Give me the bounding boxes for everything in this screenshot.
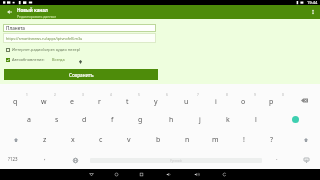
staticText: 2 — [54, 93, 56, 97]
button[interactable]: f — [98, 110, 127, 129]
button[interactable]: i — [201, 91, 230, 110]
staticText: 5 — [138, 93, 140, 97]
button[interactable]: ! — [229, 130, 258, 149]
button[interactable]: q — [1, 91, 30, 110]
button[interactable]: ?123 — [0, 149, 26, 168]
button[interactable]: Backspace — [290, 91, 319, 110]
staticText: p — [269, 97, 274, 107]
staticText: c — [99, 135, 103, 145]
button[interactable]: g — [126, 110, 155, 129]
staticText: https://smarttvnews.ru/apps/iptvnofeB.m3… — [6, 36, 83, 41]
staticText: y — [154, 97, 158, 107]
staticText: Автообновление: — [12, 57, 45, 62]
button[interactable]: y — [141, 91, 170, 110]
button[interactable]: Интернет-радио(через аудио плеер) — [4, 46, 156, 53]
staticText: 3 — [82, 93, 84, 97]
staticText: m — [212, 135, 219, 145]
button[interactable]: , — [33, 149, 57, 168]
staticText: Сохранить — [69, 72, 94, 78]
button[interactable]: Автообновление: — [4, 56, 156, 63]
staticText: Интернет-радио(через аудио плеер) — [12, 47, 81, 52]
staticText: z — [43, 135, 47, 145]
staticText: 6 — [166, 93, 168, 97]
button[interactable]: Shift — [1, 130, 30, 149]
button[interactable]: Home — [105, 169, 127, 180]
button[interactable]: u — [172, 91, 201, 110]
staticText: . — [276, 154, 278, 162]
button[interactable]: o — [229, 91, 258, 110]
staticText: g — [138, 115, 143, 125]
button[interactable]: Back — [80, 169, 102, 180]
button[interactable]: Recents — [130, 169, 152, 180]
button[interactable]: l — [241, 110, 270, 129]
staticText: t — [126, 97, 129, 107]
button[interactable]: r — [85, 91, 114, 110]
staticText: 9 — [254, 93, 256, 97]
button[interactable]: Сохранить — [4, 69, 158, 80]
staticText: 4 — [110, 93, 112, 97]
button[interactable]: v — [114, 130, 143, 149]
button[interactable]: More options — [306, 5, 320, 19]
staticText: a — [27, 115, 31, 125]
staticText: d — [82, 115, 87, 125]
staticText: , — [44, 154, 46, 162]
button[interactable]: Back — [2, 5, 16, 19]
staticText: ! — [243, 135, 245, 145]
staticText: r — [98, 97, 101, 107]
staticText: o — [241, 97, 246, 107]
button[interactable]: Hide keyboard — [293, 151, 319, 170]
staticText: Новый канал — [17, 7, 48, 13]
staticText: s — [55, 115, 59, 125]
staticText: 0 — [282, 93, 284, 97]
button[interactable]: c — [86, 130, 115, 149]
staticText: f — [111, 115, 114, 125]
button[interactable]: Volume down — [157, 169, 179, 180]
button[interactable]: Enter — [281, 110, 310, 129]
button[interactable]: j — [185, 110, 214, 129]
button[interactable]: p — [257, 91, 286, 110]
staticText: h — [169, 115, 174, 125]
staticText: q — [13, 97, 18, 107]
button[interactable]: z — [30, 130, 59, 149]
staticText: v — [127, 135, 131, 145]
button[interactable]: e — [57, 91, 86, 110]
button[interactable]: Планета — [3, 24, 156, 32]
button[interactable]: w — [29, 91, 58, 110]
staticText: u — [184, 97, 189, 107]
button[interactable]: a — [14, 110, 43, 129]
staticText: ?123 — [8, 156, 18, 162]
button[interactable]: ? — [257, 130, 286, 149]
button[interactable]: m — [201, 130, 230, 149]
staticText: n — [185, 135, 190, 145]
staticText: ? — [270, 135, 274, 145]
staticText: 7 — [197, 93, 199, 97]
staticText: w — [41, 97, 47, 107]
button[interactable]: s — [42, 110, 71, 129]
staticText: j — [199, 115, 201, 125]
staticText: 1 — [26, 93, 28, 97]
button[interactable]: d — [70, 110, 99, 129]
button[interactable]: Switch language — [64, 151, 86, 170]
staticText: b — [156, 135, 161, 145]
button[interactable]: b — [144, 130, 173, 149]
staticText: k — [226, 115, 230, 125]
button[interactable]: Volume up — [185, 169, 207, 180]
staticText: x — [71, 135, 75, 145]
staticText: e — [70, 97, 74, 107]
staticText: Всегда — [52, 57, 65, 62]
button[interactable]: h — [157, 110, 186, 129]
staticText: 8 — [226, 93, 228, 97]
staticText: Русский — [170, 159, 182, 163]
button[interactable]: t — [113, 91, 142, 110]
staticText: 19:44 — [307, 0, 318, 5]
button[interactable]: k — [213, 110, 242, 129]
button[interactable]: n — [173, 130, 202, 149]
staticText: l — [255, 115, 257, 125]
button[interactable]: Shift — [291, 130, 320, 149]
button[interactable]: https://smarttvnews.ru/apps/iptvnofeB.m3… — [3, 33, 156, 43]
button[interactable]: x — [58, 130, 87, 149]
staticText: Планета — [6, 25, 25, 31]
button[interactable]: Rotate — [213, 169, 235, 180]
